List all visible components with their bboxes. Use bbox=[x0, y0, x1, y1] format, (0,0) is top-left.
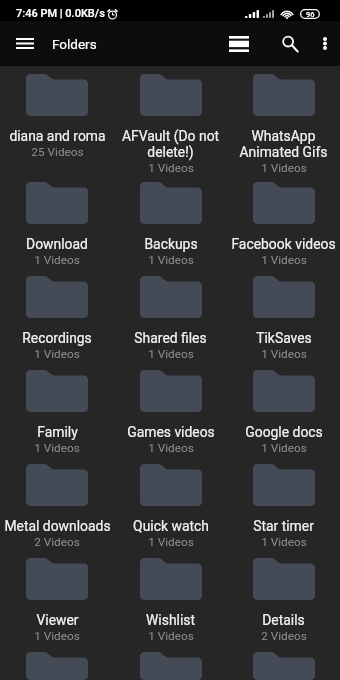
button[interactable]: Change view layout bbox=[221, 21, 257, 66]
staticText: Google docs bbox=[245, 424, 323, 440]
button[interactable]: Star timer bbox=[227, 456, 340, 550]
staticText: 1 Videos bbox=[261, 253, 307, 267]
button[interactable]: Metal downloads bbox=[0, 456, 114, 550]
staticText: 1 Videos bbox=[148, 253, 194, 267]
staticText: 1 Videos bbox=[148, 629, 194, 643]
staticText: 1 Videos bbox=[34, 347, 80, 361]
staticText: Viewer bbox=[36, 612, 79, 628]
staticText: diana and roma bbox=[9, 128, 106, 144]
staticText: 25 Videos bbox=[31, 145, 84, 159]
button[interactable]: Details bbox=[227, 550, 340, 644]
staticText: Details bbox=[262, 612, 305, 628]
button[interactable]: TikSaves bbox=[227, 268, 340, 362]
button[interactable]: Shared files bbox=[114, 268, 227, 362]
staticText: Games videos bbox=[127, 424, 215, 440]
staticText: Wishlist bbox=[146, 612, 195, 628]
staticText: Facebook videos bbox=[231, 236, 336, 252]
button[interactable]: Recordings bbox=[0, 268, 114, 362]
button[interactable]: Movies bbox=[0, 644, 114, 680]
button[interactable]: Quick watch bbox=[114, 456, 227, 550]
button[interactable]: Music bbox=[114, 644, 227, 680]
staticText: WhatsApp Animated Gifs bbox=[228, 128, 339, 160]
button[interactable]: AFVault (Do not delete!) bbox=[114, 66, 227, 174]
button[interactable]: Games videos bbox=[114, 362, 227, 456]
staticText: 1 Videos bbox=[261, 347, 307, 361]
staticText: 7:46 PM | 0.0KB/s bbox=[16, 7, 105, 20]
staticText: Shared files bbox=[134, 330, 207, 346]
button[interactable]: diana and roma bbox=[0, 66, 114, 174]
staticText: Download bbox=[26, 236, 88, 252]
staticText: 1 Videos bbox=[261, 441, 307, 455]
staticText: 1 Videos bbox=[148, 347, 194, 361]
staticText: 1 Videos bbox=[261, 161, 307, 174]
button[interactable]: Photos bbox=[227, 644, 340, 680]
staticText: 2 Videos bbox=[34, 535, 80, 549]
button[interactable]: Viewer bbox=[0, 550, 114, 644]
staticText: 2 Videos bbox=[261, 629, 307, 643]
staticText: Metal downloads bbox=[4, 518, 111, 534]
staticText: 1 Videos bbox=[148, 441, 194, 455]
button[interactable]: Family bbox=[0, 362, 114, 456]
staticText: 1 Videos bbox=[148, 535, 194, 549]
staticText: Family bbox=[37, 424, 78, 440]
staticText: 1 Videos bbox=[261, 535, 307, 549]
button[interactable]: Wishlist bbox=[114, 550, 227, 644]
staticText: Folders bbox=[52, 36, 97, 52]
staticText: AFVault (Do not delete!) bbox=[115, 128, 226, 160]
button[interactable]: Google docs bbox=[227, 362, 340, 456]
button[interactable]: More options bbox=[310, 21, 340, 66]
staticText: 1 Videos bbox=[34, 441, 80, 455]
staticText: Quick watch bbox=[133, 518, 209, 534]
staticText: 1 Videos bbox=[148, 161, 194, 174]
button[interactable]: Facebook videos bbox=[227, 174, 340, 268]
button[interactable]: WhatsApp Animated Gifs bbox=[227, 66, 340, 174]
button[interactable]: Backups bbox=[114, 174, 227, 268]
staticText: 1 Videos bbox=[34, 253, 80, 267]
staticText: Recordings bbox=[22, 330, 92, 346]
staticText: Backups bbox=[144, 236, 198, 252]
staticText: Star timer bbox=[253, 518, 314, 534]
button[interactable]: Search bbox=[257, 21, 310, 66]
staticText: TikSaves bbox=[256, 330, 312, 346]
button[interactable]: Download bbox=[0, 174, 114, 268]
staticText: 1 Videos bbox=[34, 629, 80, 643]
staticText: 96 bbox=[306, 10, 315, 19]
button[interactable]: Navigation menu bbox=[0, 21, 50, 66]
